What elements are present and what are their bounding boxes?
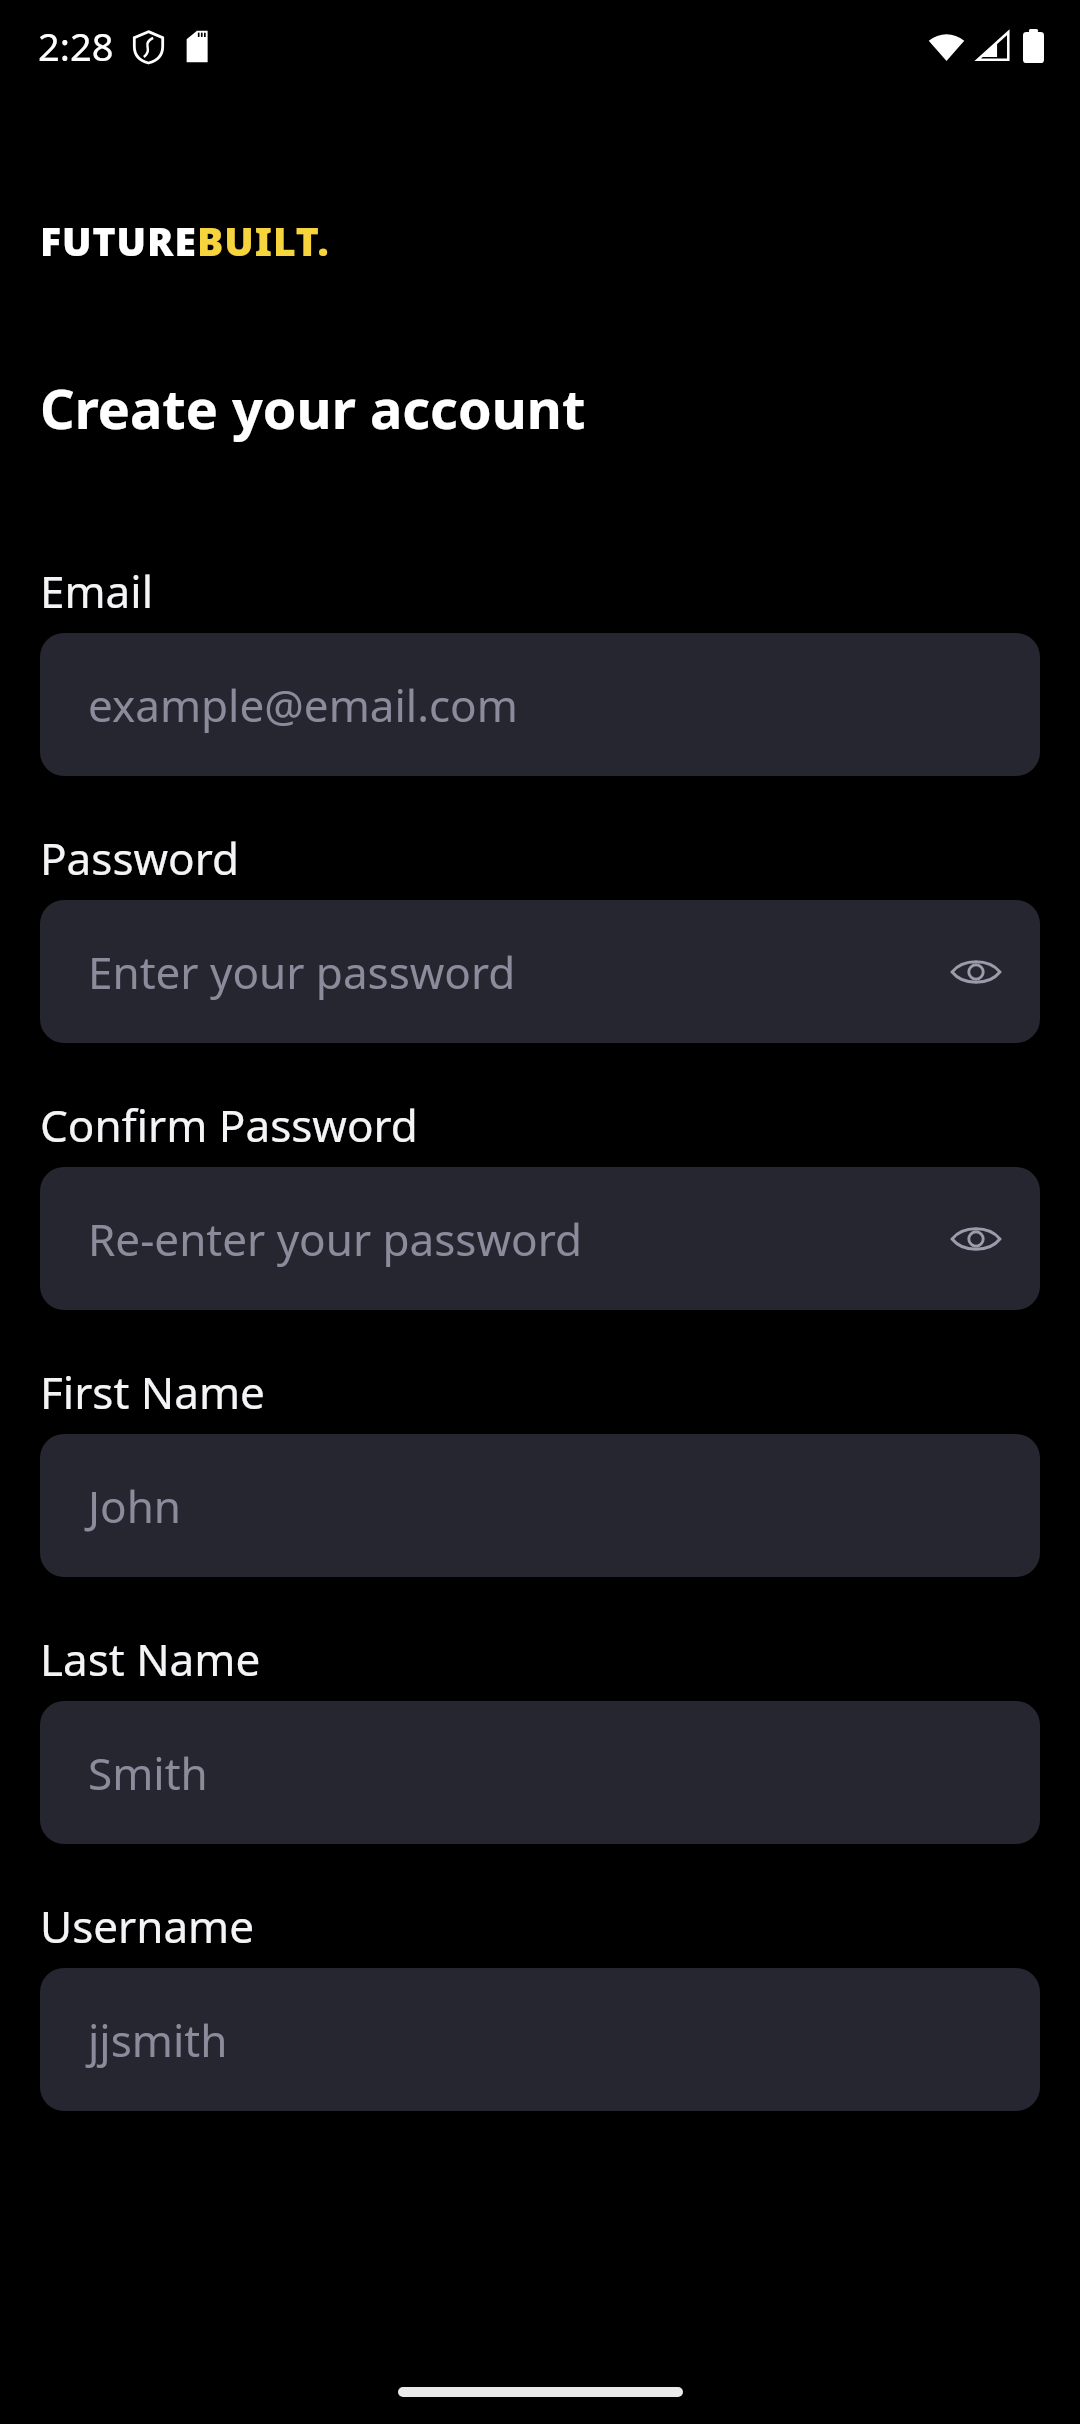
- button[interactable]: Enter your password: [40, 900, 1040, 1043]
- staticText: FUTUREBUILT.: [40, 214, 330, 267]
- staticText: Confirm Password: [40, 1095, 418, 1155]
- button[interactable]: example@email.com: [40, 633, 1040, 776]
- staticText: Enter your password: [88, 942, 946, 1002]
- button[interactable]: Show password: [946, 942, 1006, 1002]
- staticText: Last Name: [40, 1629, 261, 1689]
- staticText: First Name: [40, 1362, 265, 1422]
- staticText: Smith: [88, 1743, 1006, 1803]
- staticText: Username: [40, 1896, 255, 1956]
- button[interactable]: Smith: [40, 1701, 1040, 1844]
- button[interactable]: Show confirm password: [946, 1209, 1006, 1269]
- staticText: jjsmith: [88, 2010, 1006, 2070]
- staticText: Create your account: [40, 371, 586, 445]
- staticText: example@email.com: [88, 675, 1006, 735]
- staticText: 2:28: [38, 20, 114, 72]
- button[interactable]: John: [40, 1434, 1040, 1577]
- staticText: Email: [40, 561, 153, 621]
- staticText: Password: [40, 828, 240, 888]
- staticText: John: [88, 1476, 1006, 1536]
- button[interactable]: jjsmith: [40, 1968, 1040, 2111]
- button[interactable]: Re-enter your password: [40, 1167, 1040, 1310]
- staticText: Re-enter your password: [88, 1209, 946, 1269]
